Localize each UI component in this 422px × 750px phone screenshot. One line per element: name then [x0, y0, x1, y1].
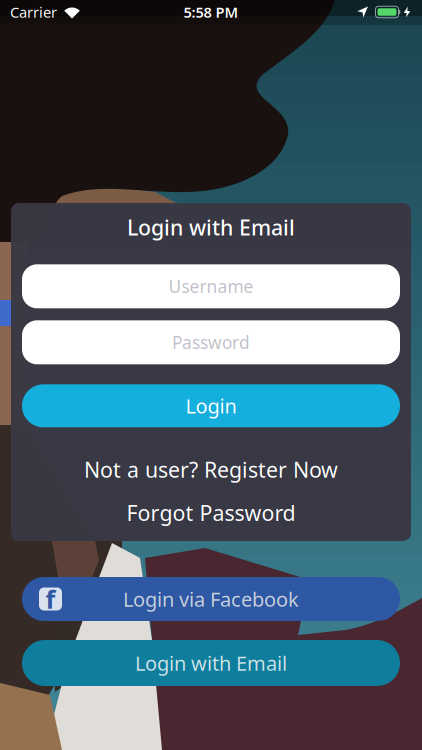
staticText: Forgot Password [126, 499, 295, 527]
staticText: f [45, 582, 55, 616]
staticText: Login [185, 393, 236, 419]
staticText: Carrier [10, 2, 57, 22]
staticText: Not a user? Register Now [84, 455, 338, 484]
staticText: Login with Email [135, 650, 287, 676]
button[interactable]: Username [22, 264, 400, 308]
staticText: Username [168, 275, 253, 298]
button[interactable]: Login [22, 384, 400, 427]
staticText: Password [172, 331, 250, 354]
staticText: Login with Email [127, 213, 295, 241]
button[interactable]: Not a user? Register Now [84, 455, 338, 484]
button[interactable]: Password [22, 320, 400, 364]
staticText: 5:58 PM [183, 2, 238, 22]
button[interactable]: Login via Facebook [22, 577, 400, 621]
button[interactable]: Login with Email [22, 640, 400, 686]
button[interactable]: Forgot Password [126, 499, 295, 527]
staticText: Login via Facebook [123, 586, 299, 612]
